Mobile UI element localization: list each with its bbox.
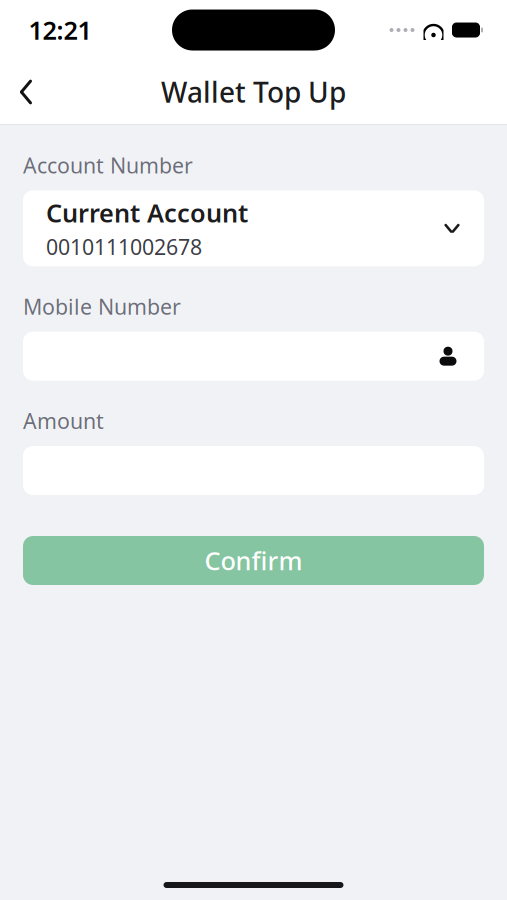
staticText: Confirm xyxy=(204,544,302,577)
staticText: 12:21 xyxy=(28,13,91,47)
staticText: Amount xyxy=(23,407,104,435)
button[interactable]: Confirm xyxy=(23,536,484,585)
staticText: Account Number xyxy=(23,151,193,179)
staticText: 0010111002678 xyxy=(46,232,202,261)
button[interactable]: Choose contact xyxy=(426,332,470,380)
staticText: Current Account xyxy=(46,196,248,229)
staticText: Wallet Top Up xyxy=(161,73,346,111)
staticText: Mobile Number xyxy=(23,292,181,321)
button[interactable]: Current Account xyxy=(23,190,484,266)
button[interactable]: Back xyxy=(0,70,52,114)
